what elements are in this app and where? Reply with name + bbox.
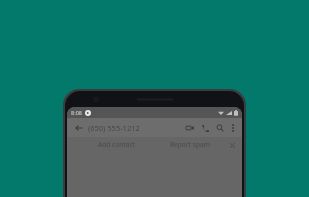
- button[interactable]: More options: [227, 122, 238, 133]
- button[interactable]: Back: [72, 121, 85, 134]
- button[interactable]: Add contact: [94, 138, 140, 151]
- button[interactable]: Search: [213, 121, 226, 134]
- button[interactable]: Video call: [183, 121, 196, 134]
- button[interactable]: Dismiss: [227, 140, 237, 150]
- staticText: Add contact: [98, 140, 136, 149]
- button[interactable]: Call: [198, 121, 211, 134]
- staticText: (650) 555-1212: [88, 123, 140, 133]
- staticText: Report spam: [170, 140, 210, 149]
- staticText: 8:08: [71, 109, 82, 116]
- button[interactable]: Report spam: [166, 138, 214, 151]
